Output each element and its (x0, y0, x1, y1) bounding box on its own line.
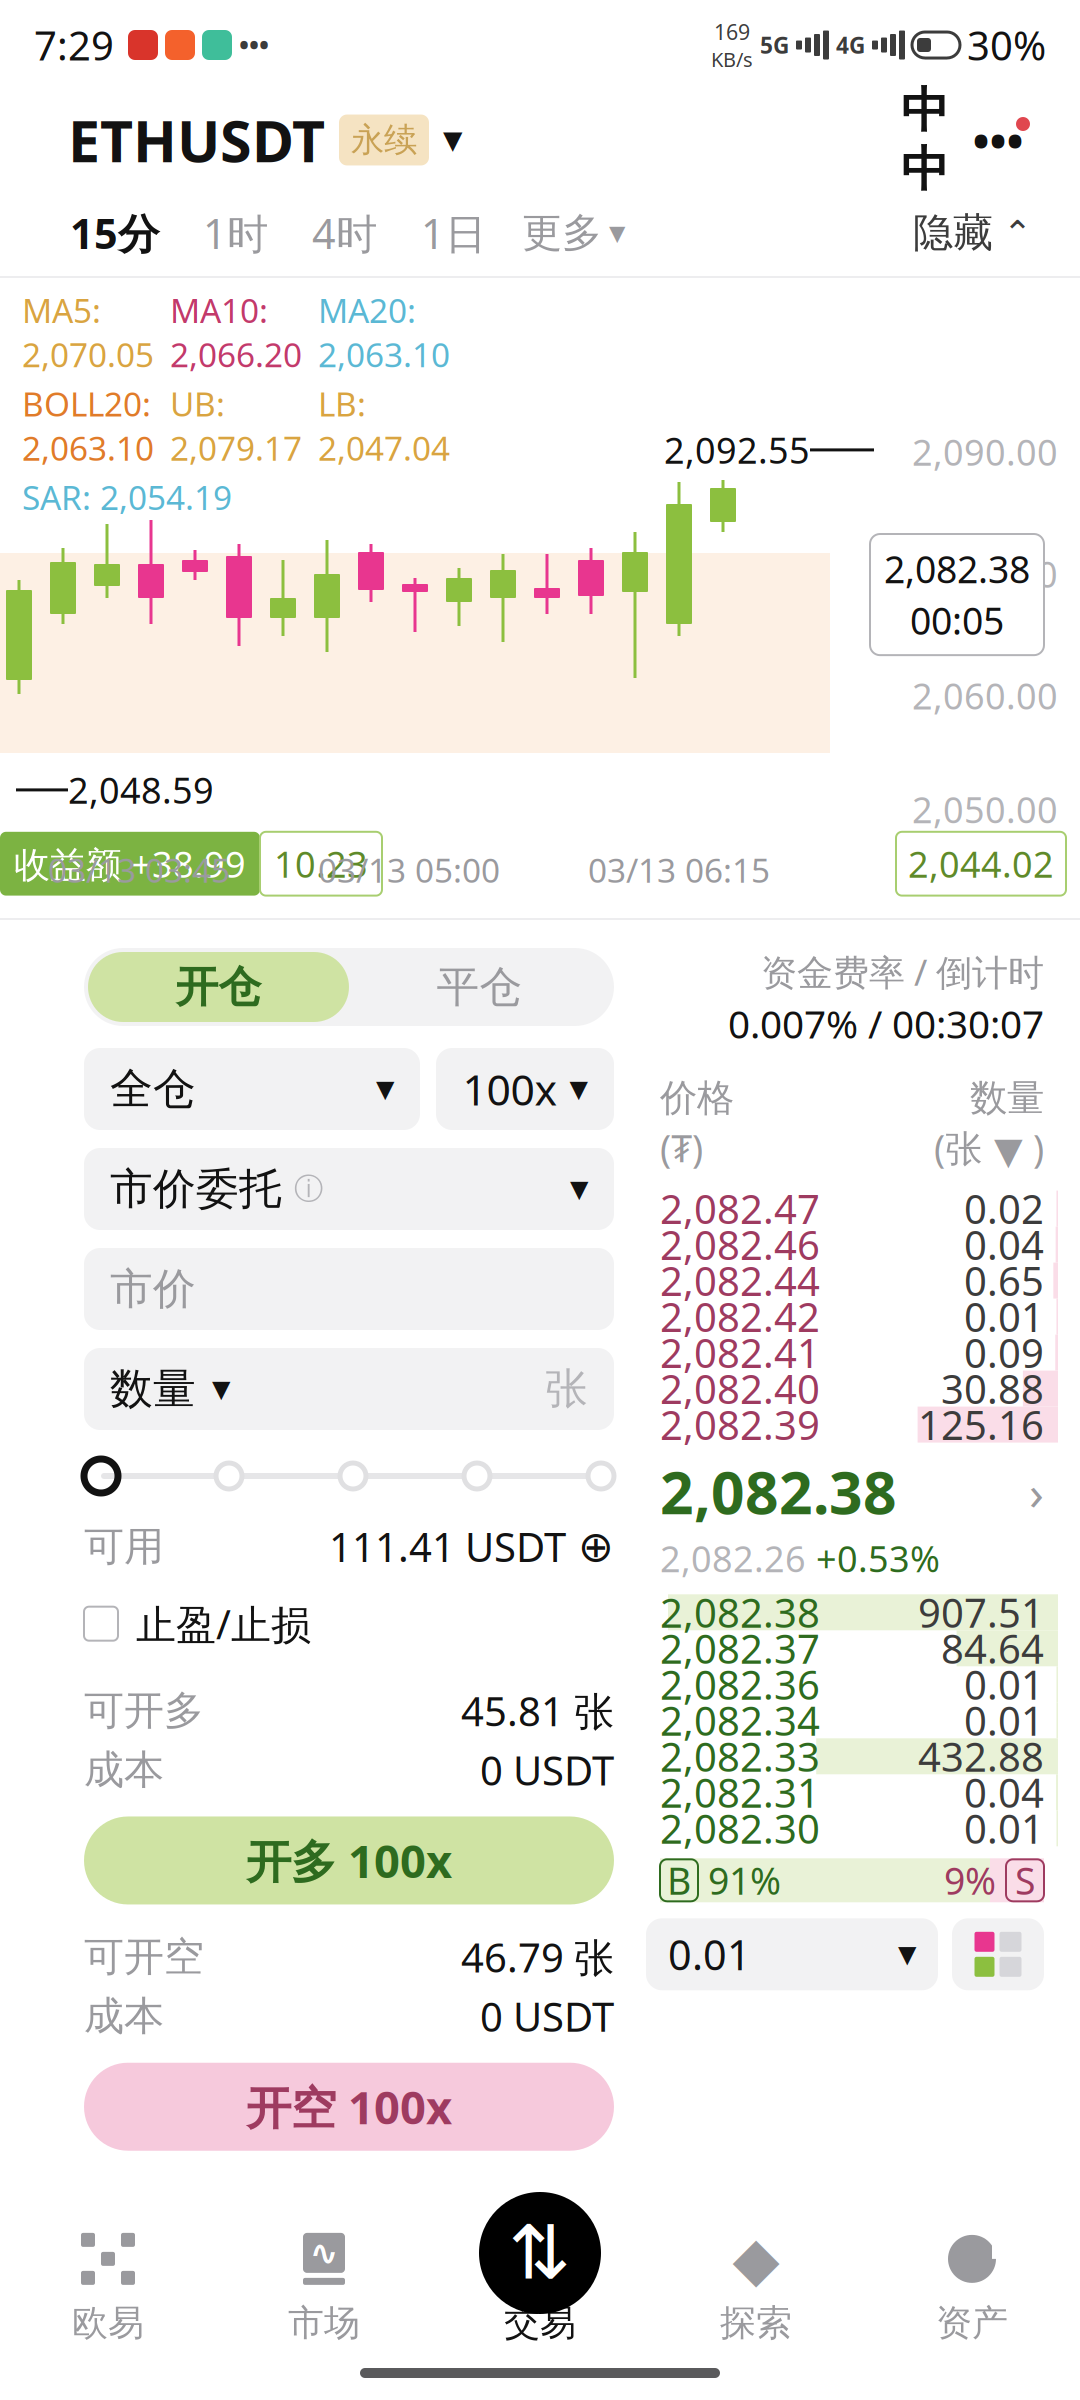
button[interactable]: 2,082.42 (646, 1299, 1058, 1335)
button[interactable]: 欧易 (0, 2203, 216, 2397)
staticText: ••• (972, 110, 1023, 170)
staticText: 市价 (110, 1263, 196, 1315)
staticText: 00:05 (910, 596, 1004, 645)
staticText: 46.79 张 (461, 1930, 614, 1984)
button[interactable]: 1时 (181, 190, 290, 276)
button[interactable]: 2,082.44 (646, 1263, 1058, 1299)
button[interactable]: 2,082.37 (646, 1630, 1058, 1666)
button[interactable]: 平仓 (349, 952, 610, 1022)
staticText: 0.65 (964, 1254, 1044, 1307)
button[interactable]: 0.01 (646, 1918, 938, 1990)
staticText: ▼ (569, 1075, 587, 1103)
staticText: 全仓 (110, 1063, 196, 1115)
staticText: 2,082.31 (660, 1766, 820, 1819)
button[interactable]: 2,082.41 (646, 1335, 1058, 1371)
button[interactable]: 4时 (290, 190, 399, 276)
staticText: 03/13 05:00 (318, 848, 500, 892)
staticText: ⌃ (1003, 213, 1032, 253)
staticText: 30% (967, 18, 1046, 71)
button[interactable]: ◆ (648, 2203, 864, 2397)
button[interactable]: 2,082.38 (646, 1453, 1058, 1582)
button[interactable]: 2,082.34 (646, 1702, 1058, 1738)
staticText: 市价委托 (110, 1163, 282, 1215)
staticText: 1日 (421, 206, 486, 260)
button[interactable]: 市价 (84, 1248, 614, 1330)
staticText: 2,082.44 (660, 1254, 820, 1307)
button[interactable]: Trade (479, 2192, 601, 2314)
staticText: 0.01 (964, 1694, 1044, 1747)
button[interactable]: 资产 (864, 2203, 1080, 2397)
staticText: 2,082.33 (660, 1730, 820, 1783)
staticText: 中中 (901, 81, 949, 199)
button[interactable]: (张 ▼ ) (934, 1123, 1044, 1173)
button[interactable]: 2,082.33 (646, 1738, 1058, 1774)
staticText: 03/13 03:45 (48, 848, 230, 892)
staticText: 0.007% / 00:30:07 (728, 998, 1044, 1049)
button[interactable]: 1日 (399, 190, 508, 276)
button[interactable]: 更多 (508, 190, 639, 276)
button[interactable]: 2,082.36 (646, 1666, 1058, 1702)
button[interactable]: 2,082.40 (646, 1371, 1058, 1407)
button[interactable]: 开多 100x (84, 1816, 614, 1904)
staticText: 收益额 +38.99 (14, 840, 246, 888)
staticText: MA20: 2,063.10 (318, 288, 450, 376)
button[interactable]: ETHUSDT (68, 102, 462, 178)
button[interactable]: 2,082.46 (646, 1227, 1058, 1263)
button[interactable]: 市价委托 (84, 1148, 614, 1230)
staticText: 2,048.59 (68, 766, 214, 814)
staticText: 2,082.34 (660, 1694, 820, 1747)
staticText: (张 ▼ ) (934, 1123, 1044, 1173)
staticText: 成本 (84, 1992, 164, 2041)
button[interactable]: Depth view mode (952, 1918, 1044, 1990)
button[interactable]: 开空 100x (84, 2063, 614, 2151)
button[interactable]: 隐藏 (913, 190, 1032, 276)
button[interactable]: ∿ (216, 2203, 432, 2397)
staticText: › (1029, 1460, 1044, 1523)
staticText: 张 (545, 1363, 588, 1415)
staticText: 开空 100x (246, 2077, 452, 2137)
staticText: 0.01 (668, 1927, 751, 1982)
staticText: 10.23 (274, 840, 368, 888)
staticText: ◆ (732, 2224, 779, 2294)
staticText: 隐藏 (913, 208, 993, 257)
staticText: 开仓 (175, 961, 261, 1013)
button[interactable]: Add funds (578, 1522, 614, 1571)
staticText: 169 (714, 18, 750, 46)
staticText: 交易 (504, 2301, 576, 2345)
button[interactable]: 开仓 (88, 952, 349, 1022)
staticText: 2,070.00 (912, 550, 1058, 598)
staticText: ⓘ (294, 1171, 323, 1207)
staticText: 2,082.38 (660, 1586, 820, 1639)
button[interactable]: 100x (436, 1048, 614, 1130)
staticText: ▼ (570, 1175, 588, 1203)
button[interactable]: 资金费率 / 倒计时 (646, 948, 1058, 1049)
staticText: SAR: 2,054.19 (22, 475, 232, 519)
button[interactable]: 全仓 (84, 1048, 420, 1130)
staticText: 84.64 (941, 1622, 1044, 1675)
button[interactable]: 2,082.30 (646, 1810, 1058, 1846)
button[interactable]: 交易 (432, 2203, 648, 2397)
button[interactable]: 2,082.47 (646, 1191, 1058, 1227)
staticText: 4G (836, 30, 865, 60)
staticText: ∿ (309, 2233, 338, 2272)
staticText: 成本 (84, 1745, 164, 1794)
staticText: 永续 (351, 119, 417, 160)
staticText: 9% (944, 1855, 996, 1905)
staticText: 432.88 (918, 1730, 1044, 1783)
button[interactable]: 15分 (48, 190, 181, 276)
staticText: 100x (462, 1061, 557, 1117)
staticText: ▼ (376, 1075, 394, 1103)
staticText: ETHUSDT (68, 102, 325, 178)
button[interactable]: More options (960, 105, 1036, 175)
button[interactable]: 2,082.31 (646, 1774, 1058, 1810)
button[interactable]: 数量 (84, 1348, 614, 1430)
button[interactable]: 2,082.38 (646, 1594, 1058, 1630)
staticText: 可用 (84, 1522, 164, 1571)
button[interactable]: Chart settings (890, 105, 960, 175)
staticText: 可开空 (84, 1932, 204, 1982)
staticText: 0.01 (964, 1290, 1044, 1343)
button[interactable]: 2,082.39 (646, 1407, 1058, 1443)
staticText: 2,090.00 (912, 428, 1058, 476)
staticText: 0.02 (964, 1182, 1044, 1235)
button[interactable]: 止盈/止损 (84, 1597, 614, 1650)
